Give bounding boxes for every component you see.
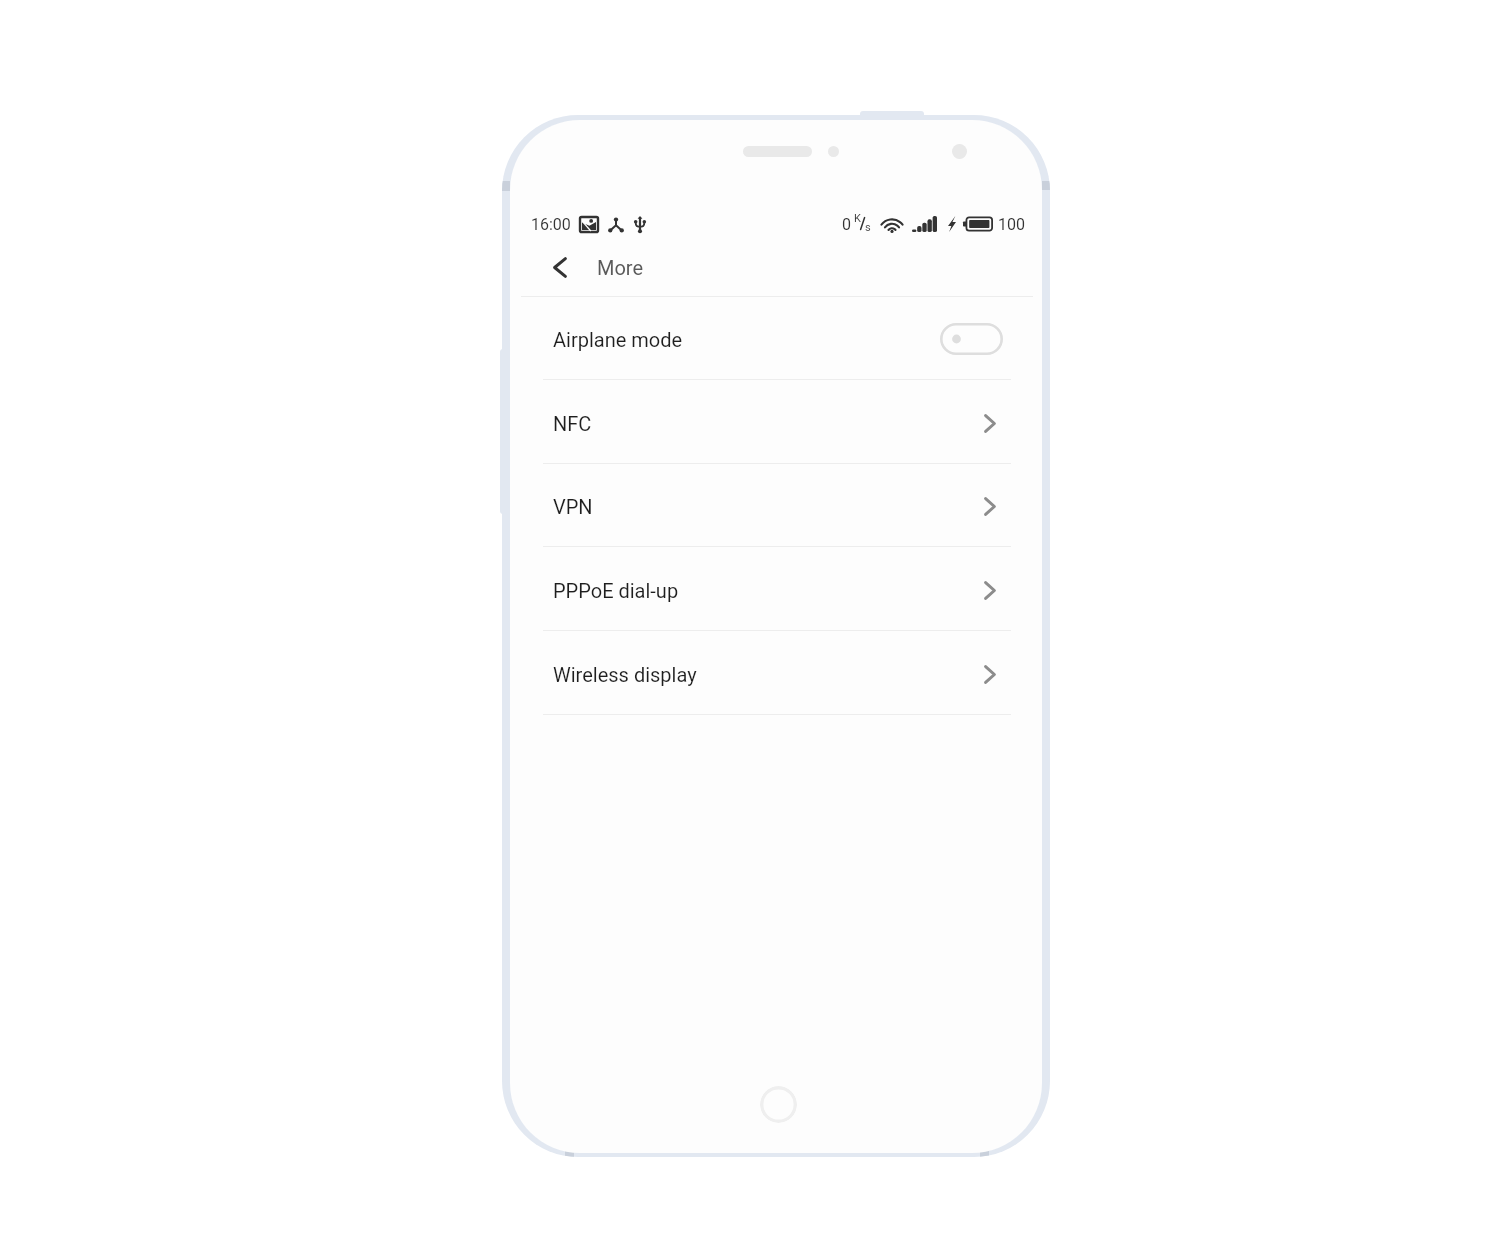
staticText: 100 — [998, 215, 1025, 234]
staticText: 0 — [842, 215, 851, 234]
staticText: Airplane mode — [553, 328, 683, 351]
button[interactable]: Home — [760, 1086, 797, 1123]
staticText: s — [865, 221, 871, 234]
button[interactable]: Wireless display — [510, 632, 1042, 716]
button[interactable]: PPPoE dial-up — [510, 548, 1042, 632]
button[interactable]: Airplane mode — [510, 297, 1042, 381]
staticText: Wireless display — [553, 663, 697, 686]
staticText: PPPoE dial-up — [553, 579, 679, 602]
staticText: More — [597, 256, 644, 279]
staticText: K — [854, 212, 861, 225]
button[interactable]: Airplane mode switch, off — [940, 323, 1003, 355]
button[interactable]: NFC — [510, 381, 1042, 465]
staticText: 16:00 — [531, 215, 571, 234]
staticText: NFC — [553, 412, 592, 435]
staticText: VPN — [553, 495, 593, 518]
button[interactable]: VPN — [510, 464, 1042, 548]
button[interactable]: Back — [539, 250, 581, 285]
